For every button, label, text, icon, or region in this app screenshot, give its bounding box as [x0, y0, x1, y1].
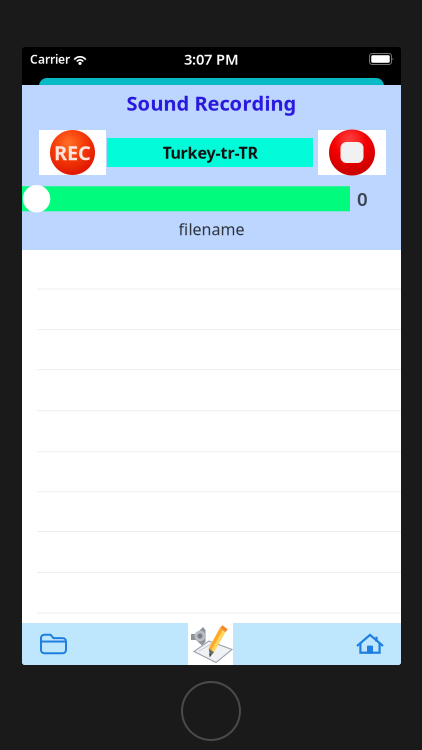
staticText: 3:07 PM — [184, 49, 239, 69]
button[interactable]: Files — [22, 623, 188, 665]
staticText: REC — [54, 139, 91, 166]
staticText: filename — [178, 218, 244, 240]
button[interactable]: REC — [39, 130, 106, 175]
button[interactable]: Stop — [318, 130, 386, 175]
staticText: Carrier — [30, 51, 70, 67]
staticText: 0 — [357, 186, 368, 211]
staticText: Turkey-tr-TR — [162, 142, 257, 163]
button[interactable]: Record — [188, 623, 233, 665]
button[interactable]: Home — [233, 623, 401, 665]
staticText: Sound Recording — [126, 90, 296, 116]
